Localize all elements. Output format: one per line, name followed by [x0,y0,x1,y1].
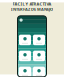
staticText: FÁCIL Y ATRACTIVA [12,1,51,6]
button[interactable] [19,51,31,61]
button[interactable] [33,51,45,61]
button[interactable]: Profile [19,18,23,22]
staticText: INTERFAZ DE MANEJO [11,6,53,12]
button[interactable] [33,67,45,77]
button[interactable] [33,35,45,45]
button[interactable] [19,35,31,45]
button[interactable] [19,67,31,77]
